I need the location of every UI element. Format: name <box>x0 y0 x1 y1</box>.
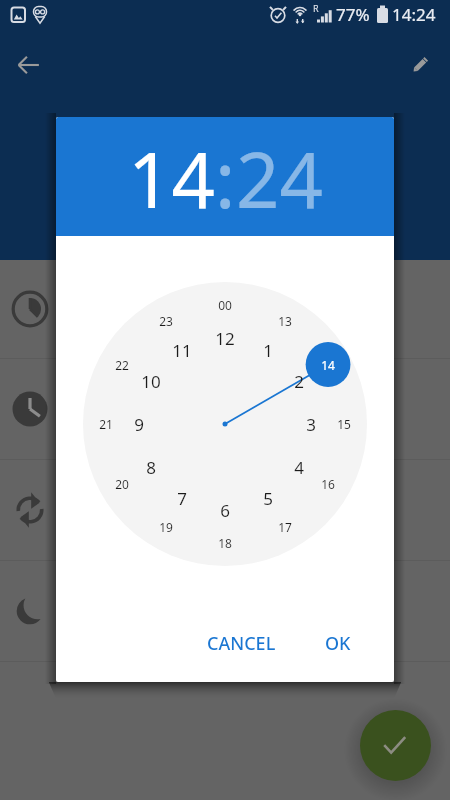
button[interactable] <box>0 460 450 561</box>
staticText: 4 <box>294 456 304 479</box>
button[interactable]: 00 <box>203 291 247 319</box>
staticText: 14 <box>321 357 335 373</box>
button[interactable]: 3 <box>289 410 333 438</box>
button[interactable]: 5 <box>246 484 290 512</box>
staticText: 9 <box>134 413 144 436</box>
staticText: 14:24 <box>392 3 436 26</box>
staticText: 1 <box>263 339 273 362</box>
button[interactable]: Edit <box>400 45 440 85</box>
button[interactable]: 7 <box>160 484 204 512</box>
staticText: 2 <box>294 370 304 393</box>
button[interactable]: 11 <box>160 336 204 364</box>
staticText: 10 <box>141 370 161 393</box>
staticText: 15 <box>337 416 351 432</box>
staticText: 77% <box>336 3 370 26</box>
staticText: 5 <box>263 487 273 510</box>
button[interactable]: 12 <box>203 324 247 352</box>
button[interactable]: 15 <box>322 410 366 438</box>
button[interactable]: Save alarm <box>360 710 431 781</box>
button[interactable]: 9 <box>117 410 161 438</box>
button[interactable] <box>0 260 450 359</box>
staticText: 23 <box>159 313 173 329</box>
button[interactable] <box>0 359 450 460</box>
staticText: 11 <box>172 339 192 362</box>
staticText: 13 <box>278 313 292 329</box>
button[interactable]: 10 <box>129 367 173 395</box>
button[interactable]: 2 <box>277 367 321 395</box>
button[interactable]: 4 <box>277 453 321 481</box>
staticText: OK <box>325 631 351 656</box>
staticText: R <box>313 2 319 14</box>
button[interactable] <box>0 561 450 662</box>
button[interactable]: 1 <box>246 336 290 364</box>
staticText: 6 <box>220 499 230 522</box>
button[interactable]: 14 <box>128 127 215 231</box>
button[interactable]: 20 <box>100 470 144 498</box>
button[interactable]: 21 <box>84 410 128 438</box>
staticText: 7 <box>177 487 187 510</box>
staticText: 17 <box>278 519 292 535</box>
staticText: 20 <box>115 476 129 492</box>
button[interactable]: 14 <box>306 351 350 379</box>
staticText: 12 <box>215 327 235 350</box>
staticText: 8 <box>146 456 156 479</box>
button[interactable]: 24 <box>236 127 323 231</box>
staticText: 19 <box>159 519 173 535</box>
staticText: 21 <box>99 416 113 432</box>
button[interactable]: OK <box>315 621 361 666</box>
staticText: 18 <box>218 535 232 551</box>
button[interactable]: 17 <box>263 513 307 541</box>
staticText: CANCEL <box>207 631 276 656</box>
button[interactable]: Navigate up <box>9 45 49 85</box>
staticText: 22 <box>115 357 129 373</box>
button[interactable]: CANCEL <box>197 621 286 666</box>
button[interactable]: 19 <box>144 513 188 541</box>
button[interactable]: 13 <box>263 307 307 335</box>
staticText: 00 <box>218 297 232 313</box>
button[interactable]: 23 <box>144 307 188 335</box>
button[interactable]: 16 <box>306 470 350 498</box>
staticText: 3 <box>306 413 316 436</box>
staticText: 16 <box>321 476 335 492</box>
button[interactable]: 8 <box>129 453 173 481</box>
staticText: : <box>215 127 236 231</box>
button[interactable]: 18 <box>203 529 247 557</box>
button[interactable]: 6 <box>203 496 247 524</box>
button[interactable]: 22 <box>100 351 144 379</box>
